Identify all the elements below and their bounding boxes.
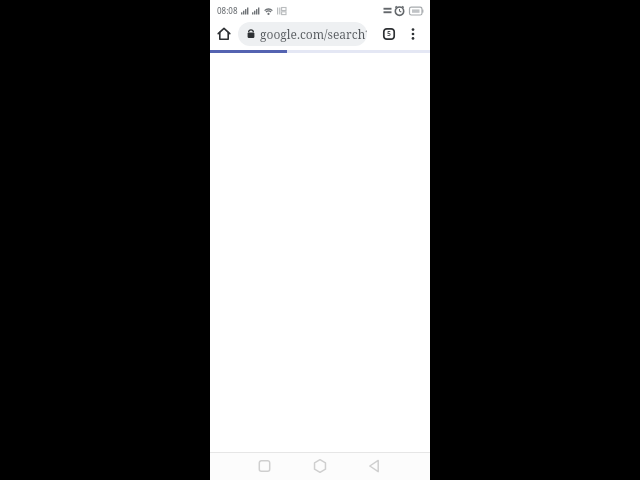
staticText: google.com/search?q (260, 26, 367, 42)
button[interactable] (405, 23, 421, 45)
button[interactable]: 5 (378, 23, 400, 45)
button[interactable] (357, 453, 430, 480)
button[interactable] (214, 24, 234, 44)
staticText: 5 (387, 29, 392, 39)
button[interactable] (210, 453, 284, 480)
button[interactable]: google.com/search?q (238, 22, 367, 46)
staticText: 08:08 (217, 5, 238, 16)
button[interactable] (284, 453, 357, 480)
